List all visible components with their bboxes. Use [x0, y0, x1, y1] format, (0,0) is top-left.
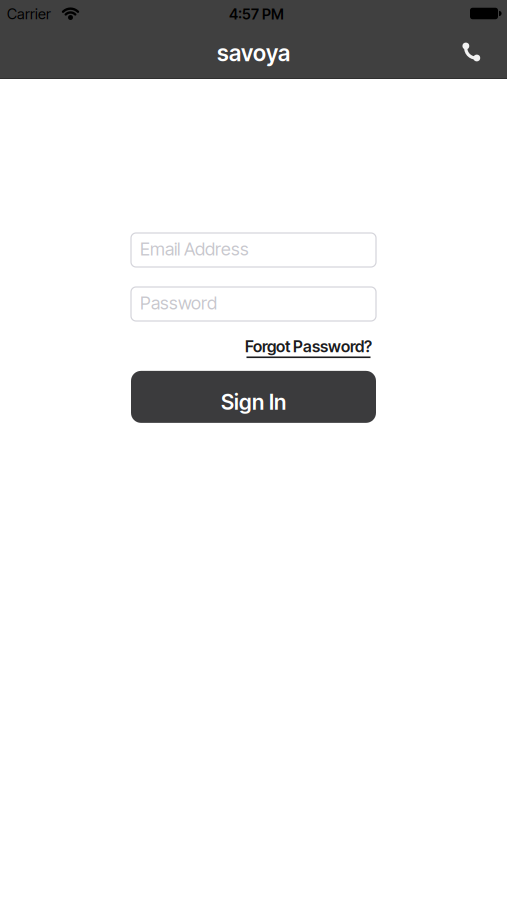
staticText: Forgot Password?: [245, 337, 372, 356]
button[interactable]: Password: [131, 287, 376, 321]
staticText: Sign In: [221, 389, 286, 414]
button[interactable]: Call: [460, 30, 507, 75]
button[interactable]: Forgot Password?: [245, 337, 376, 356]
staticText: Carrier: [7, 5, 51, 23]
staticText: 4:57 PM: [229, 5, 284, 23]
staticText: Password: [140, 292, 217, 314]
staticText: savoya: [217, 40, 290, 66]
staticText: Email Address: [140, 238, 249, 260]
button[interactable]: Sign In: [131, 371, 376, 423]
button[interactable]: Email Address: [131, 233, 376, 267]
